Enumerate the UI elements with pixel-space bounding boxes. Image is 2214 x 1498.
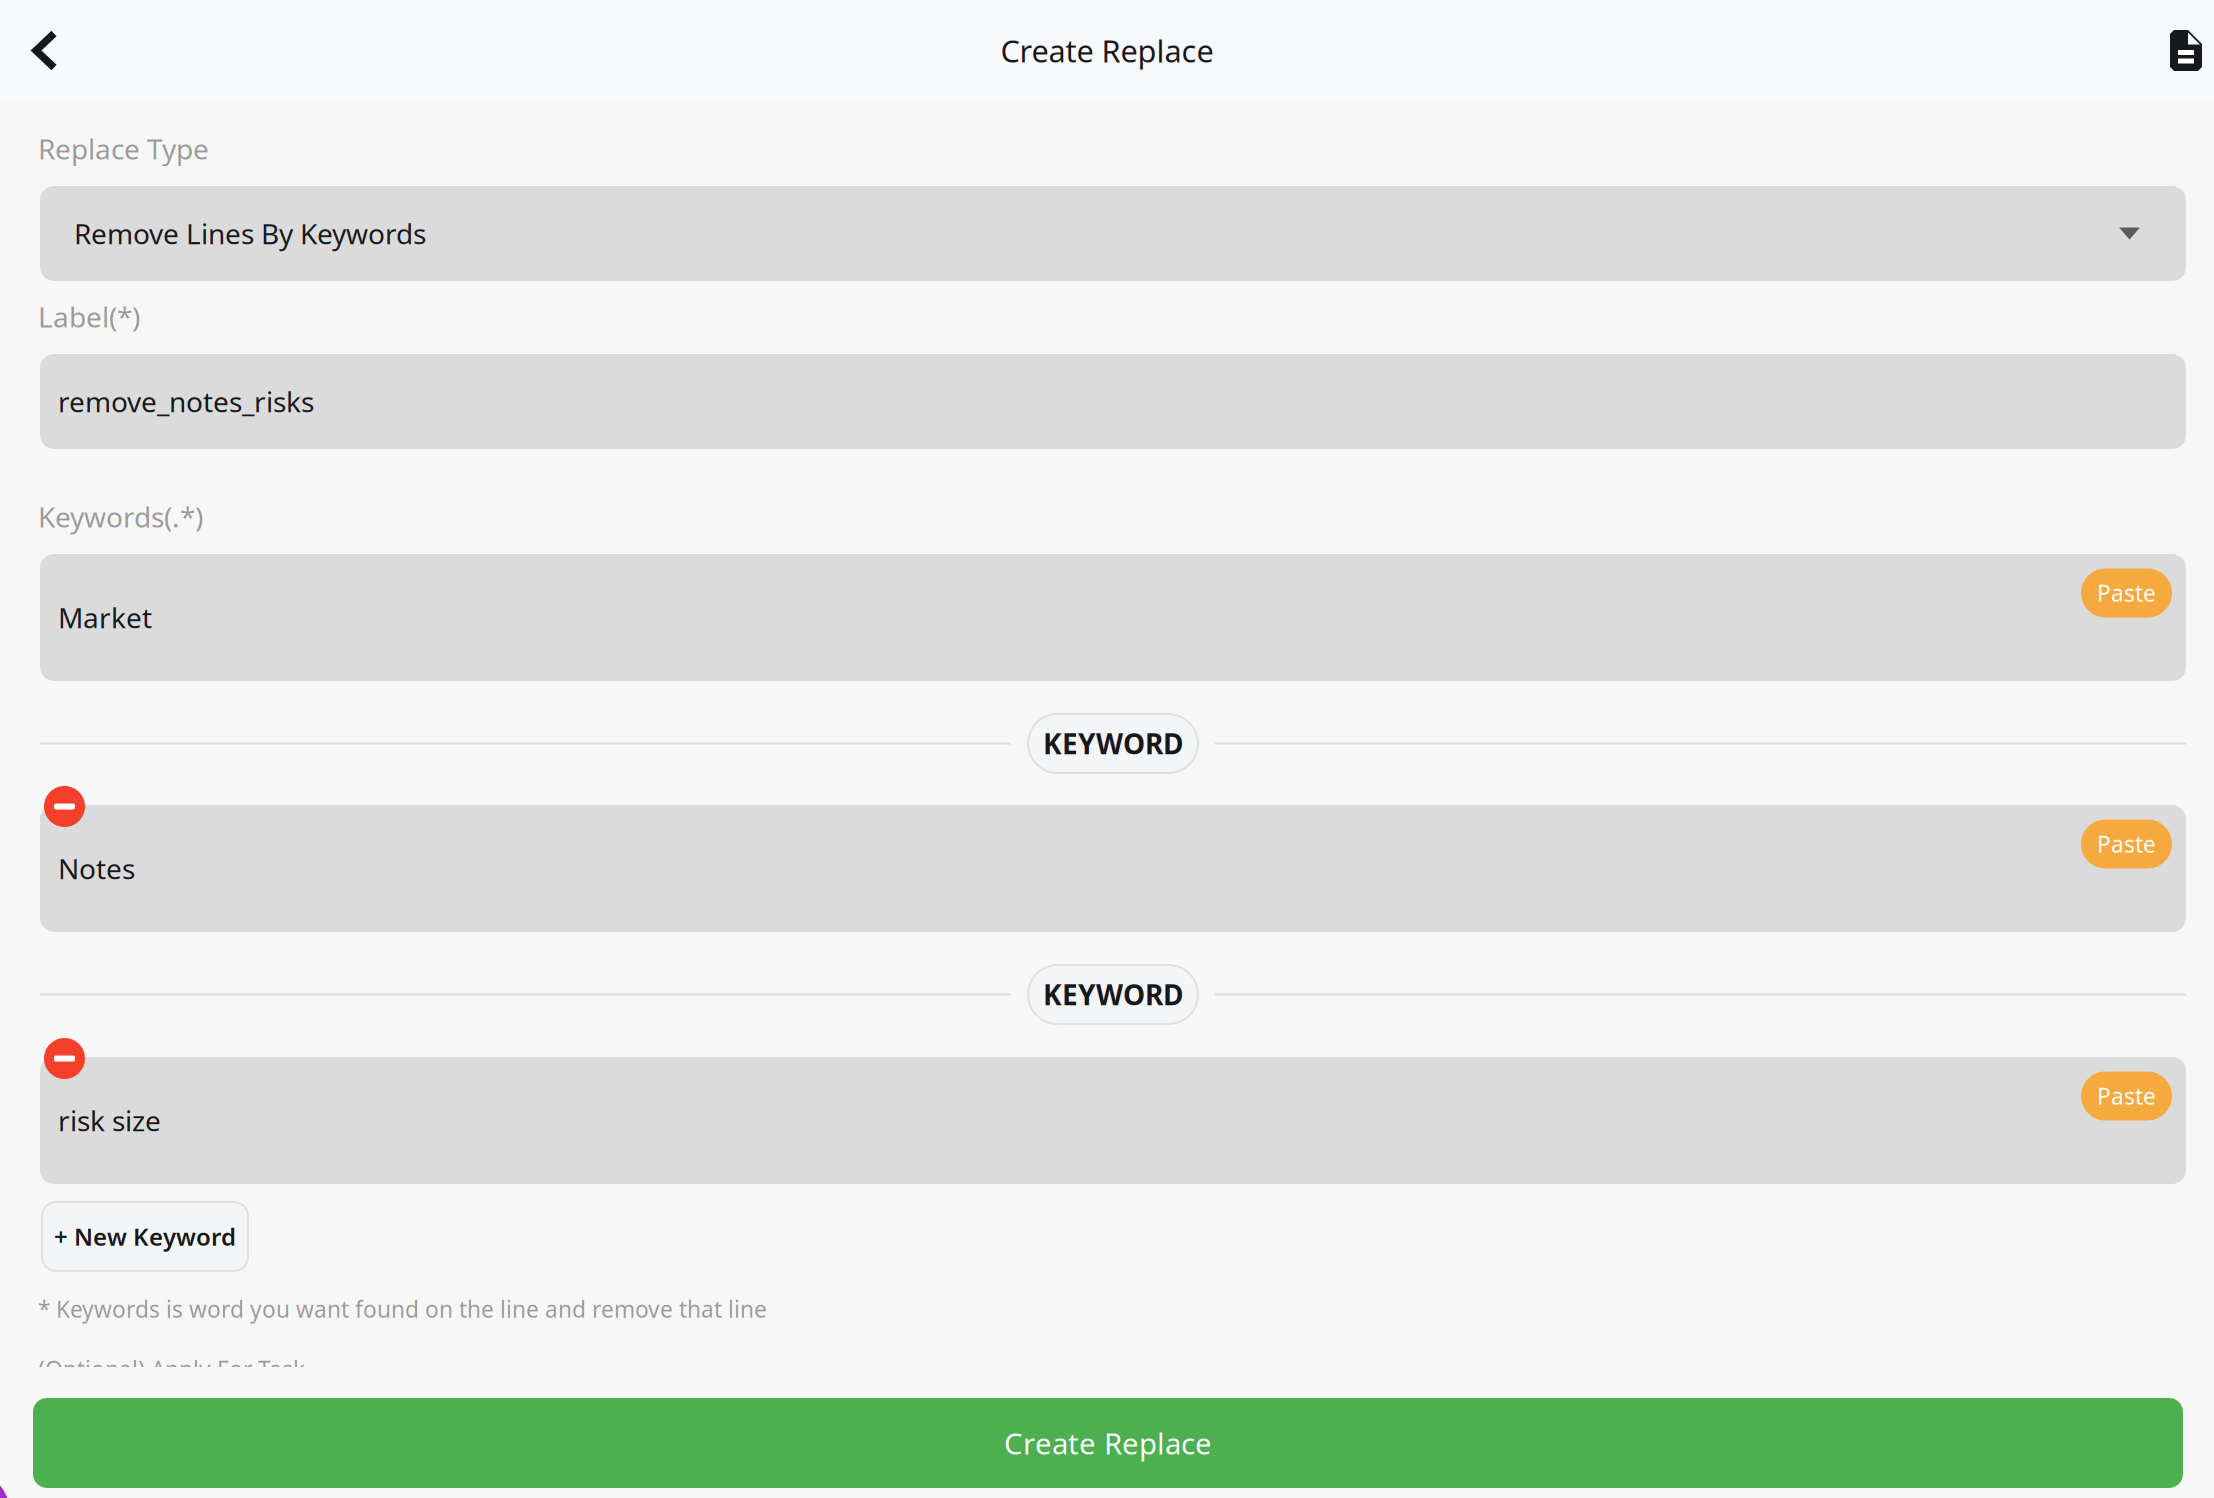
staticText: Create Replace xyxy=(1000,30,1213,71)
staticText: (Optional) Apply For Task xyxy=(38,1354,305,1384)
staticText: + New Keyword xyxy=(54,1221,236,1252)
staticText: Paste xyxy=(2097,1081,2156,1111)
staticText: * Keywords is word you want found on the… xyxy=(38,1294,767,1324)
staticText: KEYWORD xyxy=(1043,976,1183,1013)
staticText: risk size xyxy=(58,1102,161,1139)
button[interactable]: risk size xyxy=(40,1057,2186,1184)
staticText: remove_notes_risks xyxy=(58,383,314,420)
button[interactable]: Market xyxy=(40,554,2186,681)
staticText: Remove Lines By Keywords xyxy=(74,215,426,252)
staticText: Create Replace xyxy=(1004,1423,1212,1462)
button[interactable]: remove_notes_risks xyxy=(40,354,2186,449)
button[interactable]: Remove keyword xyxy=(44,1038,85,1079)
button[interactable]: Paste from clipboard xyxy=(2081,568,2172,617)
button[interactable]: Notes xyxy=(40,805,2186,932)
button[interactable]: Paste from clipboard xyxy=(2081,819,2172,868)
staticText: Paste xyxy=(2097,829,2156,859)
staticText: Label(*) xyxy=(38,298,140,335)
staticText: Notes xyxy=(58,850,135,887)
staticText: KEYWORD xyxy=(1043,725,1183,762)
button[interactable]: Paste from clipboard xyxy=(2081,1071,2172,1120)
staticText: Market xyxy=(58,599,152,636)
staticText: Replace Type xyxy=(38,130,209,167)
staticText: Paste xyxy=(2097,578,2156,608)
staticText: Keywords(.*) xyxy=(38,498,203,535)
button[interactable]: View documentation xyxy=(2148,2,2214,99)
button[interactable]: Remove keyword xyxy=(44,786,85,827)
button[interactable]: Create Replace xyxy=(33,1398,2183,1488)
button[interactable]: Back xyxy=(0,5,80,95)
button[interactable]: Remove Lines By Keywords xyxy=(40,186,2186,281)
button[interactable]: + New Keyword xyxy=(42,1202,248,1271)
